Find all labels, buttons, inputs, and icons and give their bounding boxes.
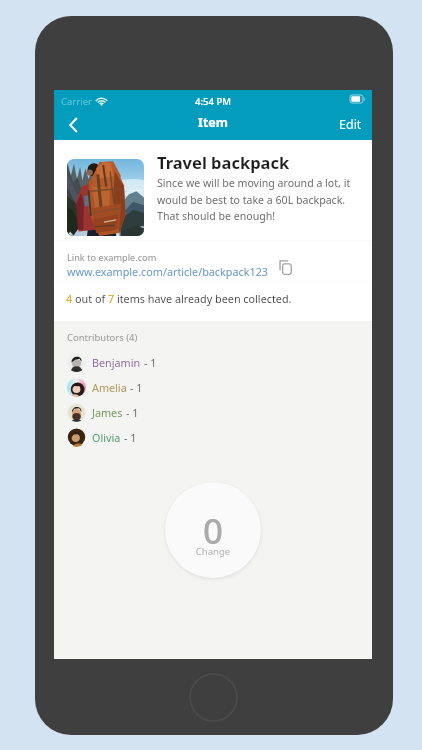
button[interactable]: Olivia [67, 425, 372, 450]
button[interactable]: Edit [339, 109, 362, 139]
staticText: - 1 [124, 430, 137, 445]
staticText: - 1 [126, 405, 139, 420]
staticText: 0 [165, 507, 261, 555]
staticText: Contributors (4) [67, 331, 138, 344]
staticText: 4 out of 7 items have already been colle… [66, 291, 292, 306]
staticText: - 1 [130, 380, 143, 395]
staticText: Change [165, 545, 261, 558]
button[interactable]: www.example.com/article/backpack123 [67, 264, 268, 279]
button[interactable]: 0 [165, 482, 261, 578]
staticText: Travel backpack [157, 151, 290, 173]
staticText: Since we will be moving around a lot, it… [157, 176, 362, 223]
staticText: 4:54 PM [54, 95, 372, 108]
button[interactable]: Copy link [273, 255, 297, 279]
staticText: Item [54, 114, 372, 131]
staticText: - 1 [144, 355, 157, 370]
staticText: Edit [339, 116, 362, 133]
staticText: Benjamin [92, 355, 141, 370]
button[interactable]: Amelia [67, 375, 372, 400]
staticText: Amelia [92, 380, 127, 395]
staticText: Olivia [92, 430, 121, 445]
button[interactable]: Benjamin [67, 350, 372, 375]
button[interactable]: Back [58, 110, 88, 140]
button[interactable]: James [67, 400, 372, 425]
staticText: Carrier [61, 95, 92, 108]
staticText: Link to example.com [67, 251, 157, 264]
staticText: James [92, 405, 123, 420]
